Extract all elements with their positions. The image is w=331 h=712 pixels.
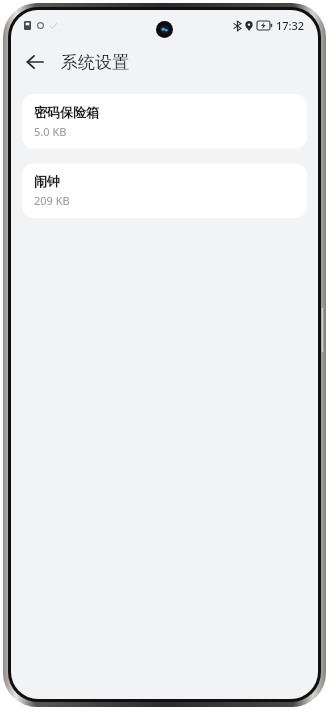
staticText: 17:32 — [276, 18, 305, 33]
staticText: 209 KB — [34, 193, 70, 208]
staticText: 闹钟 — [34, 173, 60, 189]
button[interactable]: 密码保险箱 — [22, 94, 307, 149]
staticText: 密码保险箱 — [34, 104, 99, 120]
button[interactable]: 闹钟 — [22, 163, 307, 218]
staticText: 5.0 KB — [34, 124, 67, 139]
staticText: 系统设置 — [61, 52, 129, 73]
button[interactable]: Back — [17, 44, 53, 80]
